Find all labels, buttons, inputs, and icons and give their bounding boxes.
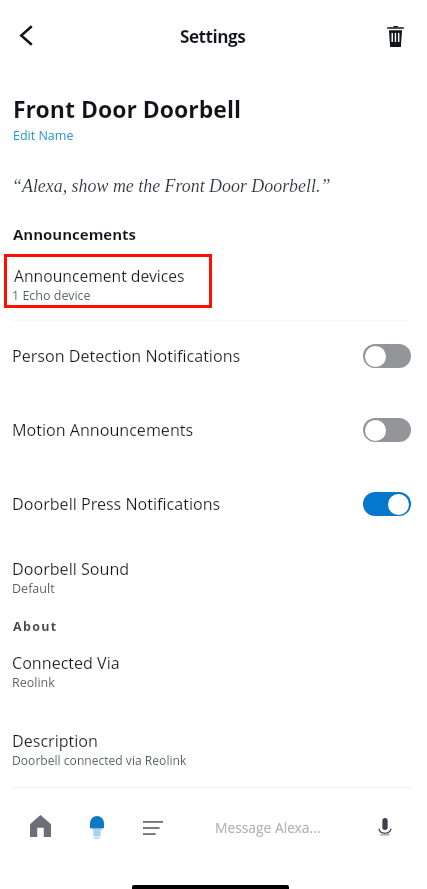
staticText: Front Door Doorbell — [13, 93, 241, 124]
staticText: Connected Via — [12, 652, 120, 674]
button[interactable]: Switch on — [363, 492, 411, 516]
staticText: Settings — [180, 25, 246, 48]
staticText: Announcements — [13, 224, 137, 244]
button[interactable]: Switch off — [363, 418, 411, 442]
button[interactable]: Edit Name — [13, 126, 74, 145]
staticText: Person Detection Notifications — [12, 345, 241, 367]
button[interactable]: Motion Announcements — [0, 407, 427, 452]
button[interactable]: Voice input — [363, 805, 407, 849]
staticText: Default — [12, 580, 55, 597]
button[interactable]: Doorbell Press Notifications — [0, 481, 427, 526]
button[interactable]: Doorbell Sound — [0, 550, 427, 600]
staticText: Doorbell Sound — [12, 558, 130, 580]
button[interactable]: Person Detection Notifications — [0, 333, 427, 378]
button[interactable]: Delete device — [373, 14, 417, 58]
button[interactable]: Connected Via — [0, 644, 427, 694]
staticText: Doorbell Press Notifications — [12, 493, 221, 515]
button[interactable]: Description — [0, 722, 427, 772]
staticText: Reolink — [12, 674, 55, 691]
staticText: Description — [12, 730, 98, 752]
staticText: 1 Echo device — [12, 287, 91, 304]
button[interactable]: Switch off — [363, 344, 411, 368]
staticText: About — [13, 618, 58, 635]
button[interactable]: Home — [18, 804, 62, 848]
staticText: Announcement devices — [14, 265, 185, 286]
button[interactable]: Devices — [75, 805, 119, 849]
button[interactable]: Lists — [131, 806, 175, 850]
staticText: Message Alexa... — [215, 818, 321, 837]
button[interactable]: Back — [4, 13, 48, 57]
button[interactable]: Announcement devices — [4, 254, 212, 308]
staticText: Motion Announcements — [12, 419, 194, 441]
staticText: Edit Name — [13, 127, 74, 144]
staticText: Doorbell connected via Reolink — [12, 752, 187, 768]
staticText: “Alexa, show me the Front Door Doorbell.… — [12, 176, 331, 196]
